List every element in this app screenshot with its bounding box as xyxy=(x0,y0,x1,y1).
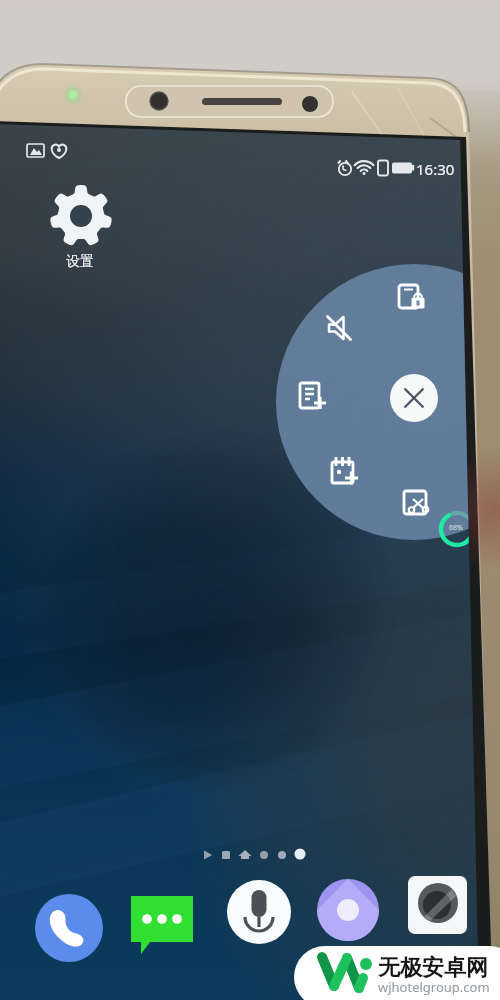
button[interactable]: Close menu xyxy=(389,373,439,423)
button[interactable]: Voice search xyxy=(227,880,291,944)
staticText: wjhotelgroup.com xyxy=(378,978,490,996)
button[interactable]: Messages xyxy=(128,888,196,956)
button[interactable]: Browser xyxy=(317,879,379,941)
button[interactable]: Screenshot xyxy=(394,481,438,525)
button[interactable]: Lock screen xyxy=(389,275,433,319)
staticText: 无极安卓网 xyxy=(378,954,488,982)
staticText: 设置 xyxy=(66,253,94,271)
button[interactable]: New event xyxy=(322,449,366,493)
button[interactable]: New note xyxy=(290,374,334,418)
button[interactable]: Phone xyxy=(35,894,103,962)
staticText: 68% xyxy=(449,523,463,533)
button[interactable]: Camera xyxy=(408,875,468,935)
button[interactable]: Mute xyxy=(317,306,361,350)
staticText: 16:30 xyxy=(416,159,455,179)
button[interactable]: Settings xyxy=(42,178,122,258)
